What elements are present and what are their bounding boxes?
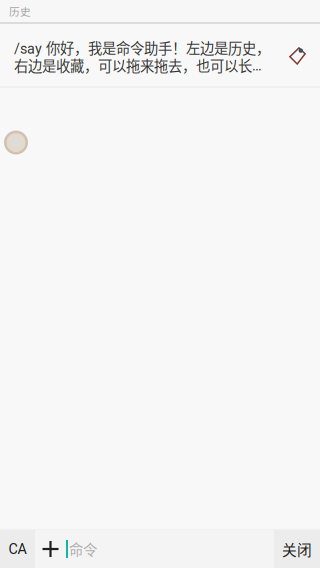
staticText: CA (8, 541, 26, 557)
button[interactable]: 关闭 (274, 530, 320, 568)
button[interactable]: CA (0, 530, 35, 568)
staticText: /say 你好，我是命令助手！左边是历史， (14, 37, 270, 58)
staticText: 关闭 (282, 538, 312, 560)
staticText: 右边是收藏，可以拖来拖去，也可以长… (14, 55, 262, 76)
staticText: 命令 (69, 539, 97, 559)
button[interactable]: Add command (35, 530, 66, 568)
staticText: 历史 (9, 3, 31, 19)
